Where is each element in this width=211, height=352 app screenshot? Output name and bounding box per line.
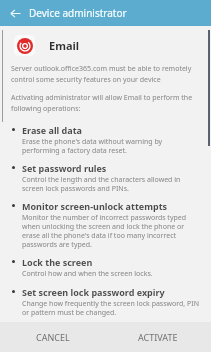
staticText: Control how and when the screen locks. <box>22 269 153 279</box>
staticText: ACTIVATE <box>138 331 178 343</box>
staticText: Device administrator <box>29 6 127 20</box>
staticText: Erase all data <box>22 124 82 136</box>
staticText: Lock the screen <box>22 256 93 268</box>
staticText: Set screen lock password expiry <box>22 286 165 298</box>
staticText: Control the length and the characters al… <box>22 175 201 193</box>
staticText: Change how frequently the screen lock pa… <box>22 299 201 317</box>
staticText: Monitor the number of incorrect password… <box>22 213 201 249</box>
button[interactable]: ACTIVATE <box>105 322 211 352</box>
staticText: CANCEL <box>36 331 70 343</box>
staticText: Server outlook.office365.com must be abl… <box>11 64 199 84</box>
staticText: Set password rules <box>22 162 107 174</box>
staticText: Monitor screen-unlock attempts <box>22 200 168 212</box>
staticText: Activating administrator will allow Emai… <box>11 93 199 113</box>
staticText: Erase the phone's data without warning b… <box>22 137 201 155</box>
button[interactable]: Back <box>4 2 26 24</box>
button[interactable]: CANCEL <box>0 322 105 352</box>
staticText: Email <box>49 38 80 53</box>
